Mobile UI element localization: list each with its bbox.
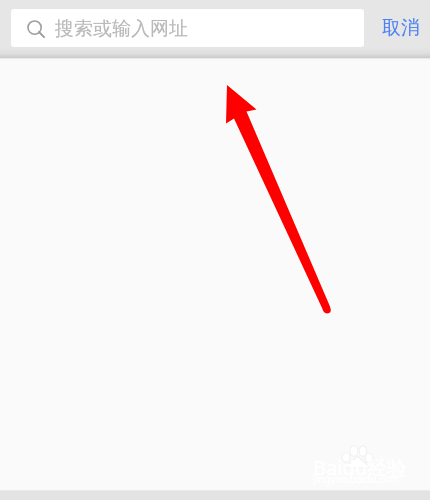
- button[interactable]: Search: [11, 9, 364, 47]
- button[interactable]: 取消: [372, 9, 430, 47]
- staticText: 搜索或输入网址: [55, 17, 188, 41]
- other: Search: [28, 21, 50, 43]
- staticText: 取消: [382, 16, 420, 40]
